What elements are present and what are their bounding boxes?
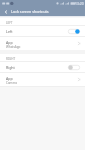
staticText: LEFT	[6, 21, 13, 25]
button[interactable]: Left	[0, 26, 85, 36]
button[interactable]: App	[0, 73, 85, 86]
staticText: Right	[6, 65, 15, 70]
staticText: Camera	[6, 81, 17, 85]
button[interactable]: App	[0, 37, 85, 50]
staticText: Lock screen shortcuts	[11, 9, 49, 14]
staticText: WhatsApp	[6, 45, 21, 49]
staticText: Left	[6, 29, 13, 34]
staticText: App	[6, 40, 13, 45]
staticText: RIGHT	[6, 57, 16, 61]
staticText: 13:20	[75, 1, 84, 6]
button[interactable]: Back	[0, 7, 11, 16]
button[interactable]: Right	[0, 62, 85, 72]
staticText: App	[6, 76, 13, 81]
